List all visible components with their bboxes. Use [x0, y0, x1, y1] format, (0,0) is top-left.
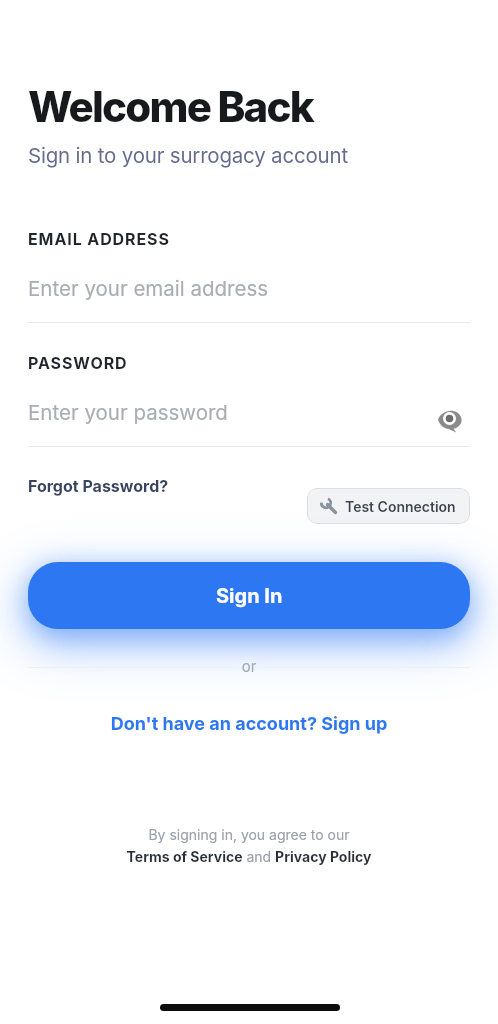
staticText: or: [0, 657, 498, 675]
button[interactable]: Test Connection: [307, 488, 470, 524]
button[interactable]: Sign In: [28, 562, 470, 629]
button[interactable]: [28, 266, 470, 322]
staticText: By signing in, you agree to our: [0, 826, 498, 843]
button[interactable]: [28, 390, 428, 446]
button[interactable]: Terms of Service and Privacy Policy: [0, 848, 498, 865]
staticText: Enter your password: [28, 400, 228, 425]
staticText: EMAIL ADDRESS: [28, 229, 170, 248]
button[interactable]: [438, 407, 463, 432]
staticText: PASSWORD: [28, 353, 128, 372]
staticText: Test Connection: [345, 498, 456, 515]
staticText: Sign in to your surrogacy account: [28, 143, 348, 168]
button[interactable]: Don't have an account? Sign up: [0, 713, 498, 735]
staticText: Enter your email address: [28, 276, 269, 301]
button[interactable]: Forgot Password?: [28, 476, 169, 495]
staticText: Sign In: [216, 584, 283, 608]
staticText: Welcome Back: [28, 81, 313, 132]
